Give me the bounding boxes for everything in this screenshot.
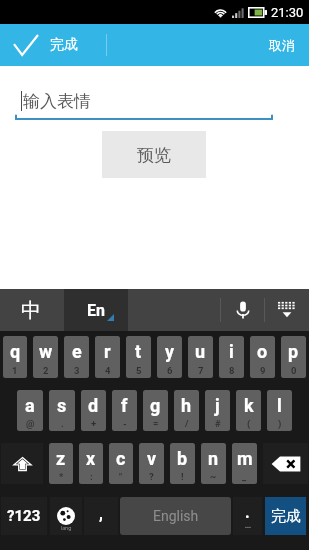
staticText: s [57, 395, 67, 416]
staticText: x [86, 448, 96, 469]
staticText: k [244, 395, 254, 416]
staticText: v [147, 448, 157, 469]
staticText: English [153, 508, 199, 524]
staticText: d [88, 395, 99, 416]
staticText: ! [181, 471, 184, 482]
button[interactable]: m [232, 443, 257, 484]
button[interactable]: h [174, 390, 199, 431]
staticText: ) [278, 418, 282, 429]
staticText: q [10, 341, 21, 362]
staticText: 8 [229, 365, 235, 376]
staticText: 9 [260, 365, 266, 376]
staticText: 0 [291, 365, 297, 376]
staticText: 5 [136, 365, 142, 376]
button[interactable]: 取消 [253, 24, 309, 66]
staticText: 输入表情 [23, 91, 91, 112]
staticText: , [99, 504, 103, 523]
staticText: / [185, 418, 189, 429]
staticText: j [215, 395, 220, 416]
button[interactable]: r [95, 336, 120, 378]
staticText: 完成 [271, 507, 301, 526]
button[interactable]: c [109, 443, 133, 484]
staticText: z [56, 448, 66, 469]
button[interactable]: x [79, 443, 103, 484]
staticText: ? [149, 471, 154, 482]
staticText: _ [242, 471, 247, 482]
staticText: 取消 [269, 37, 295, 53]
staticText: ?123 [7, 507, 41, 525]
button[interactable]: ?123 [1, 497, 47, 535]
staticText: ~ [210, 471, 217, 482]
button[interactable]: Shift [1, 443, 43, 484]
button[interactable]: v [139, 443, 164, 484]
button[interactable]: p [281, 336, 306, 378]
button[interactable]: d [81, 390, 106, 431]
staticText: e [72, 341, 82, 362]
staticText: i [229, 341, 234, 362]
staticText: 21:30 [271, 5, 304, 20]
button[interactable]: y [157, 336, 182, 378]
button[interactable]: . [233, 497, 262, 535]
staticText: : [90, 471, 93, 482]
staticText: l [277, 395, 282, 416]
button[interactable]: , [84, 497, 118, 535]
staticText: t [135, 341, 142, 362]
staticText: . [61, 418, 64, 429]
button[interactable]: w [33, 336, 58, 378]
staticText: En [87, 301, 105, 320]
button[interactable]: z [49, 443, 73, 484]
button[interactable]: u [188, 336, 213, 378]
staticText: 完成 [50, 36, 78, 54]
button[interactable]: 预览 [102, 131, 206, 178]
staticText: h [181, 395, 192, 416]
button[interactable]: l [267, 390, 292, 431]
button[interactable]: q [3, 336, 27, 378]
button[interactable]: b [170, 443, 195, 484]
staticText: 6 [167, 365, 173, 376]
staticText: o [257, 341, 268, 362]
staticText: 3 [74, 365, 80, 376]
button[interactable]: s [49, 390, 75, 431]
staticText: # [215, 418, 221, 429]
staticText: ( [247, 418, 251, 429]
staticText: . [245, 503, 250, 522]
staticText: 预览 [137, 145, 171, 166]
button[interactable]: Change language [50, 497, 82, 535]
button[interactable]: n [201, 443, 226, 484]
button[interactable]: e [64, 336, 89, 378]
staticText: lang [61, 525, 72, 532]
button[interactable]: 完成 [0, 24, 106, 66]
button[interactable]: j [205, 390, 230, 431]
staticText: + [91, 418, 97, 429]
button[interactable]: Hide keyboard [265, 289, 309, 331]
staticText: 中 [21, 298, 41, 323]
staticText: r [104, 341, 111, 362]
button[interactable]: i [219, 336, 244, 378]
staticText: = [153, 418, 159, 429]
staticText: 1 [12, 365, 18, 376]
staticText: - [123, 418, 127, 429]
staticText: c [116, 448, 126, 469]
button[interactable]: Backspace [263, 443, 308, 484]
button[interactable]: k [236, 390, 261, 431]
staticText: @ [26, 418, 35, 429]
staticText: y [165, 341, 175, 362]
staticText: ... [245, 521, 251, 531]
button[interactable]: Voice input [221, 289, 264, 331]
staticText: g [150, 395, 161, 416]
button[interactable]: 中 [0, 289, 64, 331]
button[interactable]: 完成 [265, 497, 306, 535]
staticText: " [119, 471, 123, 482]
button[interactable]: f [112, 390, 137, 431]
staticText: a [25, 395, 35, 416]
button[interactable]: En [64, 289, 128, 331]
button[interactable]: g [143, 390, 168, 431]
button[interactable]: English [120, 497, 231, 535]
button[interactable]: a [17, 390, 43, 431]
staticText: p [288, 341, 299, 362]
staticText: b [177, 448, 188, 469]
button[interactable]: t [126, 336, 151, 378]
staticText: 4 [105, 365, 111, 376]
staticText: n [208, 448, 219, 469]
button[interactable]: o [250, 336, 275, 378]
